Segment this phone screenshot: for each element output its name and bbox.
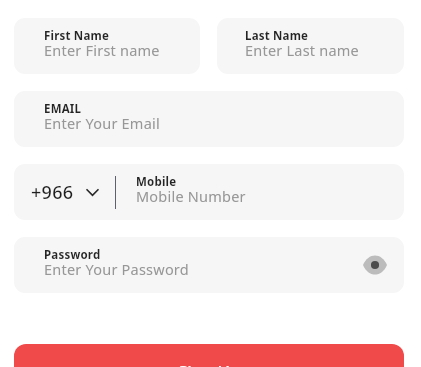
- staticText: Enter Last name: [245, 40, 360, 60]
- button[interactable]: Sign Up: [14, 344, 404, 367]
- button[interactable]: EMAIL: [14, 91, 404, 147]
- button[interactable]: First Name: [14, 18, 200, 74]
- staticText: Mobile Number: [136, 186, 246, 206]
- staticText: Enter First name: [44, 40, 160, 60]
- staticText: First Name: [44, 28, 109, 44]
- staticText: Password: [44, 247, 101, 263]
- staticText: +966: [31, 180, 74, 205]
- button[interactable]: Last Name: [217, 18, 404, 74]
- button[interactable]: Show password: [358, 248, 392, 282]
- staticText: Sign Up: [178, 360, 241, 367]
- staticText: Enter Your Password: [44, 259, 189, 279]
- staticText: Mobile: [136, 174, 177, 190]
- staticText: Enter Your Email: [44, 113, 160, 133]
- button[interactable]: +966: [14, 164, 404, 220]
- staticText: EMAIL: [44, 101, 82, 117]
- button[interactable]: Password: [14, 237, 404, 293]
- button[interactable]: +966: [14, 164, 115, 220]
- staticText: Last Name: [245, 28, 309, 44]
